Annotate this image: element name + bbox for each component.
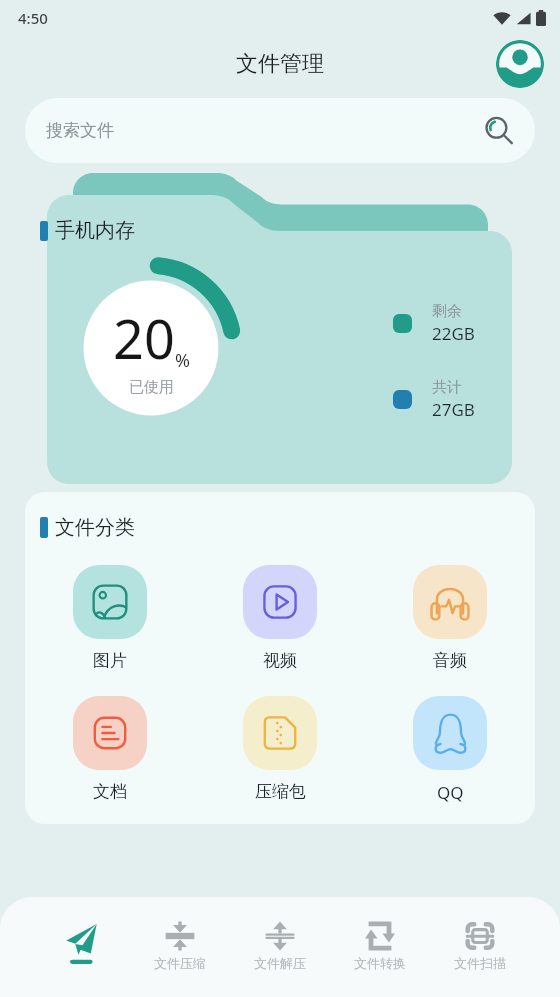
button[interactable]: 文档 xyxy=(25,696,195,802)
staticText: 文件管理 xyxy=(236,50,324,78)
staticText: 文件转换 xyxy=(354,955,406,971)
button[interactable]: 文件转换 xyxy=(330,897,430,997)
staticText: QQ xyxy=(437,781,464,804)
staticText: 视频 xyxy=(263,650,297,671)
button[interactable]: 音频 xyxy=(365,565,535,671)
button[interactable]: QQ xyxy=(365,696,535,804)
staticText: 22GB xyxy=(432,322,475,345)
staticText: 剩余 xyxy=(432,302,462,321)
staticText: 文件压缩 xyxy=(154,955,206,971)
button[interactable]: 图片 xyxy=(25,565,195,671)
staticText: % xyxy=(175,348,190,373)
staticText: 20 xyxy=(113,301,175,375)
staticText: 音频 xyxy=(433,650,467,671)
button[interactable]: Home xyxy=(30,897,130,997)
staticText: 文件解压 xyxy=(254,955,306,971)
staticText: 文档 xyxy=(93,781,127,802)
staticText: 4:50 xyxy=(18,8,48,28)
staticText: 文件扫描 xyxy=(454,955,506,971)
button[interactable]: 文件解压 xyxy=(230,897,330,997)
button[interactable]: 文件压缩 xyxy=(130,897,230,997)
staticText: 共计 xyxy=(432,378,462,397)
staticText: 已使用 xyxy=(129,378,174,397)
button[interactable]: 文件扫描 xyxy=(430,897,530,997)
other: Search xyxy=(483,115,515,147)
staticText: 图片 xyxy=(93,650,127,671)
staticText: 搜索文件 xyxy=(46,120,114,141)
staticText: 文件分类 xyxy=(55,515,135,540)
button[interactable]: Profile xyxy=(496,40,544,88)
button[interactable]: 视频 xyxy=(195,565,365,671)
staticText: 手机内存 xyxy=(55,218,135,243)
staticText: 压缩包 xyxy=(255,781,306,802)
staticText: 27GB xyxy=(432,398,475,421)
button[interactable]: 压缩包 xyxy=(195,696,365,802)
button[interactable]: 搜索文件 xyxy=(25,98,535,163)
